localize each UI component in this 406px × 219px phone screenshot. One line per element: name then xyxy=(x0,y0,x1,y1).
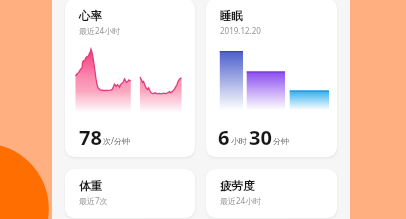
staticText: 30 xyxy=(249,124,272,151)
staticText: 最近24小时 xyxy=(220,195,262,206)
staticText: 最近7次 xyxy=(79,195,108,206)
staticText: 小时 xyxy=(231,136,247,146)
staticText: 心率 xyxy=(79,9,102,23)
staticText: 次/分钟 xyxy=(103,135,130,146)
button[interactable]: 体重 xyxy=(65,169,195,218)
staticText: 最近24小时 xyxy=(79,25,121,36)
staticText: 睡眠 xyxy=(220,9,243,23)
button[interactable]: 睡眠 xyxy=(206,0,337,157)
button[interactable]: 心率 xyxy=(65,0,195,157)
staticText: 6 xyxy=(218,124,230,151)
staticText: 体重 xyxy=(79,179,102,193)
button[interactable]: 疲劳度 xyxy=(206,169,337,218)
staticText: 疲劳度 xyxy=(220,179,255,193)
staticText: 2019.12.20 xyxy=(220,25,261,36)
staticText: 78 xyxy=(79,124,102,151)
staticText: 分钟 xyxy=(273,136,289,146)
